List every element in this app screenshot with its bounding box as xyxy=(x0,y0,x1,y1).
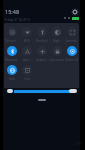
staticText: Bluetooth xyxy=(5,58,18,62)
button[interactable]: Bluetooth xyxy=(4,42,19,62)
button[interactable]: Data xyxy=(4,61,19,81)
staticText: Night xyxy=(53,39,60,43)
staticText: Cast xyxy=(24,77,30,81)
button[interactable]: Airplane xyxy=(34,42,49,62)
staticText: 15:48 xyxy=(5,8,20,15)
staticText: Do not d... xyxy=(5,39,18,43)
staticText: 5/8 xyxy=(75,141,82,146)
button[interactable]: Cast xyxy=(19,61,34,81)
staticText: Flashlight xyxy=(36,39,48,43)
staticText: Friday 21.06.2019 xyxy=(5,18,30,22)
button[interactable]: Screensh... xyxy=(64,23,79,43)
staticText: Wi-Fi xyxy=(24,39,30,43)
staticText: Airplane xyxy=(36,58,47,62)
button[interactable]: Do not d... xyxy=(4,23,19,43)
staticText: Lock screen xyxy=(49,58,64,62)
staticText: Rotate off xyxy=(65,58,78,62)
button[interactable]: Collapse shade xyxy=(38,99,46,101)
button[interactable]: Flashlight xyxy=(34,23,49,43)
button[interactable]: Lock screen xyxy=(49,42,64,62)
button[interactable]: Rotate off xyxy=(64,42,79,62)
staticText: Auto-bright... xyxy=(19,58,34,62)
button[interactable]: Auto-bright... xyxy=(19,42,34,62)
button[interactable]: Night xyxy=(49,23,64,43)
button[interactable]: Settings xyxy=(72,9,78,15)
button[interactable] xyxy=(4,88,79,94)
staticText: Data xyxy=(9,77,15,81)
button[interactable]: Wi-Fi xyxy=(19,23,34,43)
staticText: Screensh... xyxy=(65,39,79,43)
